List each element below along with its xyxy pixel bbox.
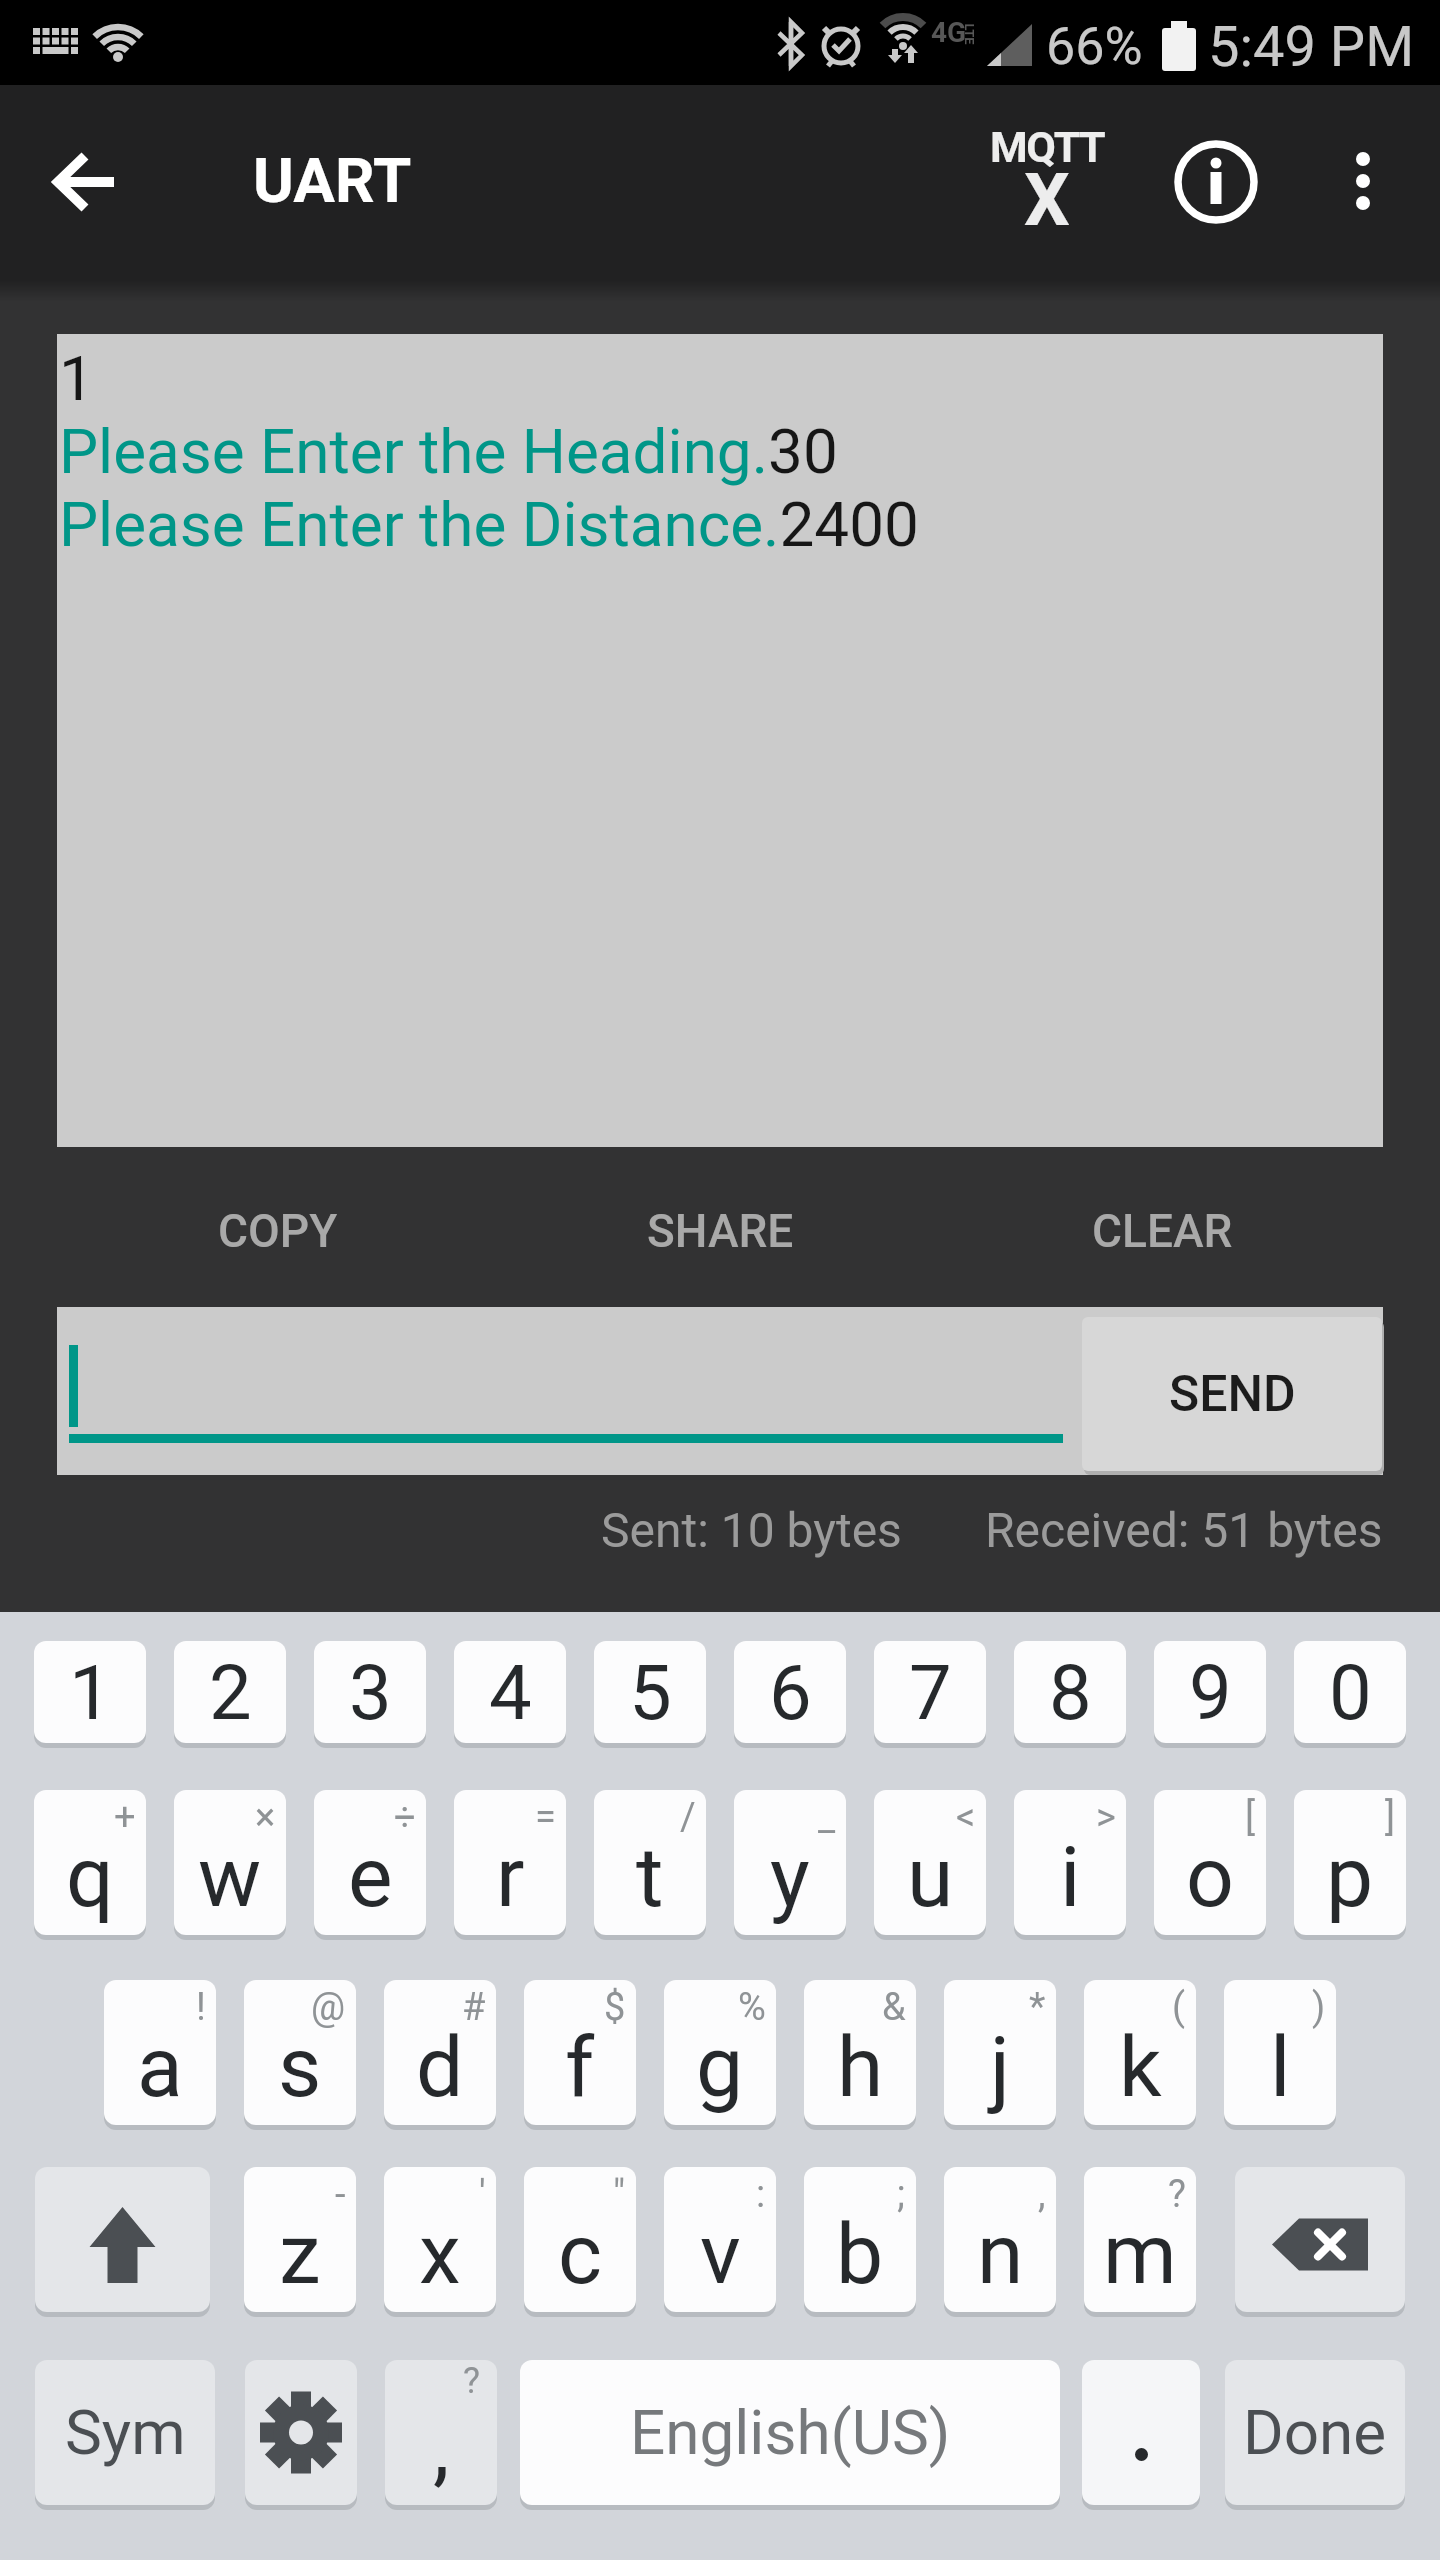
button[interactable]: c: [524, 2167, 636, 2312]
staticText: l: [1270, 2018, 1291, 2116]
staticText: @: [311, 1985, 346, 2030]
button[interactable]: y: [734, 1790, 846, 1935]
staticText: Received: 51 bytes: [985, 1502, 1383, 1558]
staticText: i: [1060, 1828, 1081, 1926]
staticText: q: [66, 1828, 114, 1926]
staticText: $: [604, 1985, 626, 2030]
staticText: 9: [1189, 1648, 1232, 1737]
button[interactable]: b: [804, 2167, 916, 2312]
staticText: >: [1096, 1795, 1116, 1840]
staticText: COPY: [218, 1204, 338, 1258]
button[interactable]: SHARE: [499, 1170, 941, 1292]
button[interactable]: [35, 132, 135, 232]
staticText: p: [1326, 1828, 1374, 1926]
staticText: 2: [209, 1648, 252, 1737]
button[interactable]: t: [594, 1790, 706, 1935]
staticText: [: [1245, 1795, 1256, 1840]
button[interactable]: English(US): [520, 2360, 1060, 2505]
staticText: SHARE: [647, 1204, 794, 1258]
staticText: 6: [769, 1648, 812, 1737]
button[interactable]: 8: [1014, 1641, 1126, 1743]
staticText: ?: [463, 2360, 481, 2402]
button[interactable]: d: [384, 1980, 496, 2125]
button[interactable]: f: [524, 1980, 636, 2125]
button[interactable]: a: [104, 1980, 216, 2125]
button[interactable]: n: [944, 2167, 1056, 2312]
staticText: h: [837, 2018, 884, 2116]
button[interactable]: Sym: [35, 2360, 215, 2505]
staticText: 1: [69, 1648, 112, 1737]
button[interactable]: Done: [1225, 2360, 1405, 2505]
button[interactable]: [1082, 2360, 1200, 2505]
button[interactable]: e: [314, 1790, 426, 1935]
button[interactable]: 4: [454, 1641, 566, 1743]
staticText: m: [1103, 2205, 1177, 2303]
button[interactable]: 0: [1294, 1641, 1406, 1743]
staticText: CLEAR: [1092, 1204, 1233, 1258]
button[interactable]: COPY: [57, 1170, 499, 1292]
button[interactable]: j: [944, 1980, 1056, 2125]
staticText: 3: [349, 1648, 392, 1737]
button[interactable]: 5: [594, 1641, 706, 1743]
button[interactable]: q: [34, 1790, 146, 1935]
staticText: u: [907, 1828, 954, 1926]
button[interactable]: h: [804, 1980, 916, 2125]
button[interactable]: 1: [34, 1641, 146, 1743]
button[interactable]: 7: [874, 1641, 986, 1743]
staticText: 4: [489, 1648, 532, 1737]
button[interactable]: i: [1014, 1790, 1126, 1935]
staticText: z: [279, 2205, 321, 2303]
staticText: ]: [1385, 1795, 1396, 1840]
staticText: (: [1172, 1985, 1186, 2030]
button[interactable]: SEND: [1082, 1317, 1382, 1471]
staticText: !: [196, 1985, 206, 2030]
button[interactable]: [1330, 135, 1395, 231]
staticText: English(US): [630, 2396, 951, 2469]
button[interactable]: 2: [174, 1641, 286, 1743]
button[interactable]: l: [1224, 1980, 1336, 2125]
button[interactable]: m: [1084, 2167, 1196, 2312]
staticText: ,: [433, 2398, 450, 2496]
button[interactable]: z: [244, 2167, 356, 2312]
button[interactable]: [1235, 2167, 1405, 2312]
staticText: ): [1312, 1985, 1326, 2030]
staticText: d: [416, 2018, 464, 2116]
button[interactable]: v: [664, 2167, 776, 2312]
button[interactable]: g: [664, 1980, 776, 2125]
staticText: UART: [253, 144, 412, 217]
button[interactable]: [57, 1307, 1063, 1475]
staticText: *: [1029, 1985, 1046, 2030]
staticText: ;: [897, 2172, 906, 2217]
staticText: #: [462, 1985, 486, 2030]
staticText: 8: [1049, 1648, 1092, 1737]
button[interactable]: 6: [734, 1641, 846, 1743]
button[interactable]: ?: [385, 2360, 497, 2505]
button[interactable]: [35, 2167, 210, 2312]
staticText: x: [419, 2205, 461, 2303]
button[interactable]: 9: [1154, 1641, 1266, 1743]
button[interactable]: p: [1294, 1790, 1406, 1935]
staticText: g: [696, 2018, 744, 2116]
staticText: r: [496, 1828, 525, 1926]
button[interactable]: x: [384, 2167, 496, 2312]
button[interactable]: w: [174, 1790, 286, 1935]
button[interactable]: k: [1084, 1980, 1196, 2125]
staticText: 66%: [1046, 16, 1143, 77]
button[interactable]: o: [1154, 1790, 1266, 1935]
button[interactable]: CLEAR: [941, 1170, 1383, 1292]
button[interactable]: [245, 2360, 357, 2505]
staticText: v: [700, 2205, 741, 2303]
button[interactable]: s: [244, 1980, 356, 2125]
staticText: MQTT: [990, 122, 1105, 172]
staticText: w: [198, 1828, 262, 1926]
staticText: -: [335, 2172, 346, 2217]
button[interactable]: r: [454, 1790, 566, 1935]
button[interactable]: u: [874, 1790, 986, 1935]
staticText: SEND: [1169, 1365, 1296, 1424]
button[interactable]: [1168, 134, 1264, 230]
button[interactable]: 3: [314, 1641, 426, 1743]
button[interactable]: MQTT: [987, 122, 1107, 234]
staticText: b: [836, 2205, 884, 2303]
staticText: 5: [629, 1648, 672, 1737]
staticText: k: [1119, 2018, 1162, 2116]
